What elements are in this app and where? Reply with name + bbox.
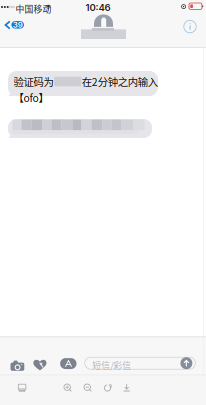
button[interactable]: Download <box>123 384 130 391</box>
staticText: 短信/彩信 <box>92 359 131 371</box>
staticText: 在2分钟之内输入 <box>82 74 158 89</box>
button[interactable]: Zoom out <box>84 384 92 392</box>
staticText: 中国移动 <box>16 2 52 15</box>
button[interactable]: Back to Messages <box>2 16 26 34</box>
staticText: 验证码为 <box>14 74 54 89</box>
button[interactable]: Toggle layout <box>18 384 26 392</box>
staticText: 10:46 <box>85 2 110 13</box>
button[interactable]: Details <box>181 18 199 36</box>
button[interactable]: Camera <box>7 358 27 374</box>
button[interactable]: Digital Touch <box>30 357 49 373</box>
staticText: 39 <box>13 20 23 30</box>
button[interactable]: Zoom in <box>64 384 72 392</box>
button[interactable]: Rotate <box>104 384 112 392</box>
staticText: 【ofo】 <box>14 90 49 105</box>
button[interactable]: Send <box>180 357 192 369</box>
button[interactable]: iMessage apps <box>60 358 76 369</box>
